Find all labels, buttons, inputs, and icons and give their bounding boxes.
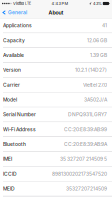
staticText: Viettel 27.0: [83, 82, 107, 88]
staticText: Model: [3, 97, 17, 103]
button[interactable]: MEID: [0, 181, 112, 196]
staticText: 35327207214509: [66, 186, 107, 192]
staticText: Serial Number: [3, 112, 36, 118]
staticText: Viettel: [13, 1, 24, 6]
staticText: 12.06 GB: [87, 37, 107, 43]
staticText: Carrier: [3, 82, 20, 88]
button[interactable]: IMEI: [0, 152, 112, 167]
staticText: CC:20:E8:39:AB:99: [64, 126, 107, 132]
button[interactable]: Wi-Fi Address: [0, 122, 112, 137]
button[interactable]: Model: [0, 92, 112, 107]
staticText: Bluetooth: [3, 141, 26, 147]
staticText: Available: [3, 52, 24, 58]
button[interactable]: General: [0, 7, 30, 18]
button[interactable]: Capacity: [0, 33, 112, 48]
staticText: Capacity: [3, 37, 25, 43]
button[interactable]: Bluetooth: [0, 137, 112, 152]
button[interactable]: Version: [0, 63, 112, 78]
staticText: 4:43 PM: [52, 1, 69, 6]
button[interactable]: Applications: [0, 18, 112, 33]
button[interactable]: Available: [0, 48, 112, 63]
staticText: Version: [3, 67, 21, 73]
staticText: 3A502J/A: [84, 97, 107, 103]
staticText: Wi-Fi Address: [3, 126, 36, 132]
staticText: General: [8, 9, 27, 15]
staticText: CC:20:E8:39:AB:9A: [64, 141, 107, 147]
button[interactable]: Serial Number: [0, 107, 112, 122]
staticText: LTE: [25, 1, 31, 6]
button[interactable]: ICCID: [0, 167, 112, 181]
staticText: 35 327207 214509 5: [60, 156, 107, 162]
staticText: 43%: [93, 1, 102, 6]
staticText: 41: [102, 23, 107, 29]
staticText: 10.2.1 (14D27): [75, 67, 107, 73]
staticText: MEID: [3, 186, 15, 192]
staticText: 1.39 GB: [90, 52, 107, 58]
staticText: DNPQ931LGRY7: [68, 112, 107, 118]
staticText: ICCID: [3, 171, 17, 177]
staticText: 8981300202173547520: [52, 171, 107, 177]
button[interactable]: Carrier: [0, 78, 112, 92]
staticText: Applications: [3, 23, 32, 29]
staticText: IMEI: [3, 156, 12, 162]
staticText: About: [48, 9, 63, 16]
